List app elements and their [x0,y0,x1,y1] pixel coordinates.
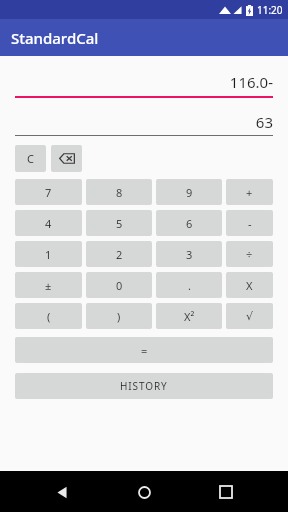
button[interactable]: 0 [86,272,152,298]
button[interactable]: + [226,179,273,205]
button[interactable]: C [15,145,46,172]
button[interactable]: 4 [15,210,82,236]
button[interactable]: 2 [86,241,152,267]
button[interactable]: HISTORY [15,373,273,399]
button[interactable]: 6 [156,210,222,236]
button[interactable]: 5 [86,210,152,236]
button[interactable]: 7 [15,179,82,205]
staticText: 6 [186,216,193,231]
button[interactable]: ÷ [226,241,273,267]
staticText: ( [47,309,51,324]
button[interactable]: . [156,272,222,298]
button[interactable]: 9 [156,179,222,205]
button[interactable]: - [226,210,273,236]
staticText: HISTORY [120,379,168,393]
staticText: 2 [116,247,123,262]
staticText: ) [117,309,121,324]
staticText: 9 [186,185,193,200]
button[interactable]: ) [86,303,152,329]
staticText: 3 [186,247,193,262]
staticText: - [248,216,252,231]
button[interactable]: X² [156,303,222,329]
button[interactable]: 8 [86,179,152,205]
button[interactable]: Home [124,472,164,512]
staticText: ± [45,278,52,293]
staticText: = [141,343,148,358]
staticText: 5 [116,216,123,231]
button[interactable]: Backspace [51,145,82,172]
staticText: + [246,185,253,200]
staticText: C [27,151,34,166]
button[interactable]: 3 [156,241,222,267]
staticText: 1 [45,247,52,262]
staticText: 8 [116,185,123,200]
staticText: 7 [45,185,52,200]
button[interactable]: ( [15,303,82,329]
button[interactable]: = [15,337,273,363]
staticText: X² [184,309,195,324]
staticText: StandardCal [11,28,99,48]
staticText: 63 [15,112,273,132]
button[interactable]: X [226,272,273,298]
button[interactable]: √ [226,303,273,329]
staticText: √ [246,310,254,323]
button[interactable]: Back [42,472,82,512]
staticText: . [188,278,191,293]
button[interactable]: Recent apps [206,472,246,512]
button[interactable]: 1 [15,241,82,267]
staticText: 4 [45,216,52,231]
button[interactable]: ± [15,272,82,298]
staticText: 11:20 [257,3,283,17]
staticText: 0 [116,278,123,293]
staticText: ÷ [246,247,253,262]
staticText: 116.0- [15,72,273,92]
staticText: X [246,278,253,293]
